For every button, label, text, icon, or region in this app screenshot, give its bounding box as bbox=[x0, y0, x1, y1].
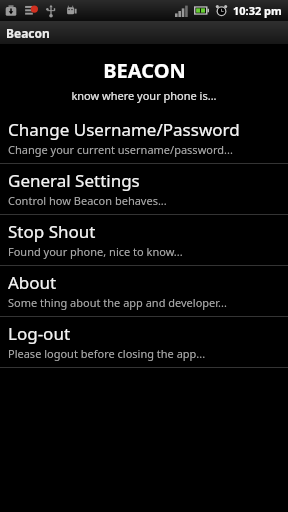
staticText: About bbox=[8, 271, 57, 294]
staticText: BEACON bbox=[103, 57, 186, 84]
button[interactable]: Stop Shout bbox=[0, 215, 288, 265]
staticText: 10:32 pm bbox=[233, 3, 282, 18]
staticText: Stop Shout bbox=[8, 220, 96, 243]
button[interactable]: General Settings bbox=[0, 164, 288, 214]
button[interactable]: Log-out bbox=[0, 317, 288, 367]
staticText: Beacon bbox=[6, 25, 50, 41]
button[interactable]: Change Username/Password bbox=[0, 113, 288, 163]
staticText: Control how Beacon behaves... bbox=[8, 193, 167, 208]
staticText: Some thing about the app and developer..… bbox=[8, 295, 227, 310]
staticText: Log-out bbox=[8, 322, 71, 345]
staticText: Found your phone, nice to know... bbox=[8, 244, 183, 259]
staticText: Please logout before closing the app... bbox=[8, 346, 206, 361]
staticText: General Settings bbox=[8, 169, 140, 192]
staticText: Change your current username/password... bbox=[8, 142, 233, 157]
button[interactable]: About bbox=[0, 266, 288, 316]
staticText: Change Username/Password bbox=[8, 118, 240, 141]
staticText: know where your phone is... bbox=[71, 88, 217, 103]
